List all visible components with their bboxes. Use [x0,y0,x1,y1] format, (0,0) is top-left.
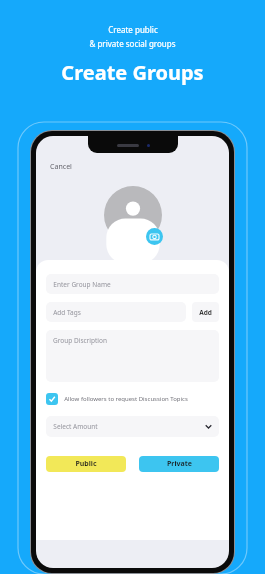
button[interactable]: Change photo [146,228,163,245]
button[interactable]: Allow followers to request Discussion To… [46,393,219,405]
staticText: Enter Group Name [53,280,111,289]
button[interactable]: Group Discription [46,330,219,382]
button[interactable]: Add [192,302,219,322]
staticText: Group Discription [53,336,107,345]
staticText: Create Groups [61,59,204,86]
staticText: Private [167,459,192,469]
staticText: Public [75,459,97,469]
button[interactable]: Public [46,456,126,472]
staticText: & private social groups [89,38,176,49]
button[interactable]: Add Tags [46,302,186,322]
button[interactable]: Cancel [48,160,74,174]
staticText: Select Amount [53,422,98,431]
staticText: Create public [108,24,158,35]
staticText: Add [199,308,212,317]
button[interactable]: Private [139,456,219,472]
staticText: Allow followers to request Discussion To… [64,395,188,403]
staticText: Add Tags [53,308,81,317]
staticText: Cancel [50,162,72,172]
button[interactable]: Select Amount [46,416,219,437]
button[interactable]: Enter Group Name [46,274,219,294]
